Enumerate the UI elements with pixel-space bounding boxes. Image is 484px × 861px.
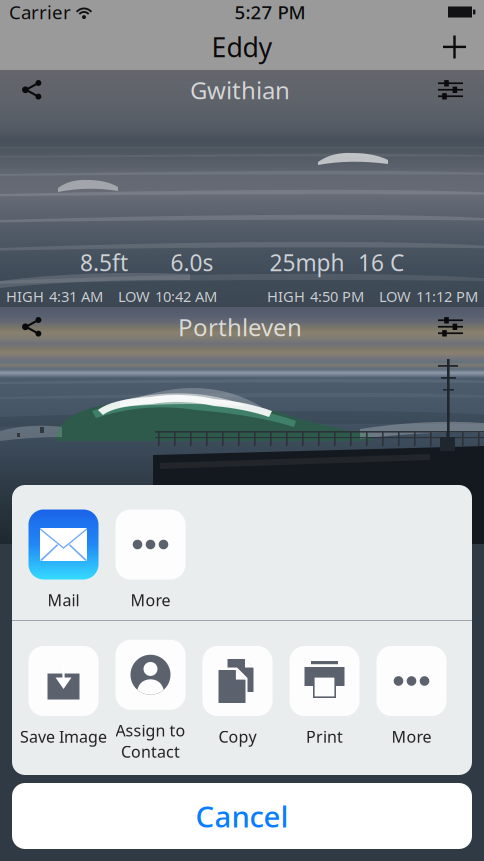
staticText: 10:42 AM: [155, 286, 217, 306]
button[interactable]: Assign to: [107, 646, 194, 756]
staticText: HIGH: [6, 286, 44, 306]
button[interactable]: Save Image: [20, 646, 107, 756]
staticText: 11:12 PM: [416, 286, 478, 306]
button[interactable]: More: [107, 509, 194, 619]
staticText: 4:31 AM: [49, 286, 103, 306]
staticText: Porthleven: [178, 311, 302, 343]
staticText: 6.0s: [170, 247, 213, 277]
staticText: Gwithian: [190, 74, 290, 106]
staticText: 16 C: [358, 247, 404, 277]
staticText: Print: [306, 726, 343, 747]
staticText: 5:27 PM: [234, 0, 305, 24]
staticText: Assign to: [115, 720, 185, 741]
staticText: 8.5ft: [80, 247, 128, 277]
button[interactable]: Share: [0, 307, 64, 347]
button[interactable]: Forecast settings: [416, 307, 484, 346]
button[interactable]: Mail: [20, 509, 107, 619]
button[interactable]: Cancel: [12, 783, 472, 849]
staticText: HIGH: [267, 286, 305, 306]
staticText: More: [391, 726, 431, 747]
staticText: Save Image: [20, 726, 107, 747]
staticText: 25mph: [269, 247, 344, 277]
staticText: Eddy: [211, 29, 272, 65]
button[interactable]: Print: [281, 646, 368, 756]
button[interactable]: Copy: [194, 646, 281, 756]
button[interactable]: Add spot: [423, 24, 484, 69]
button[interactable]: Share: [0, 70, 64, 110]
staticText: LOW: [118, 286, 150, 306]
staticText: Carrier: [9, 0, 71, 24]
staticText: Mail: [47, 589, 79, 611]
button[interactable]: More: [368, 646, 455, 756]
button[interactable]: Forecast settings: [416, 70, 484, 109]
staticText: LOW: [379, 286, 411, 306]
staticText: More: [130, 589, 170, 611]
staticText: 4:50 PM: [310, 286, 364, 306]
staticText: Copy: [218, 726, 256, 747]
staticText: Contact: [121, 741, 180, 762]
staticText: Cancel: [195, 796, 288, 835]
